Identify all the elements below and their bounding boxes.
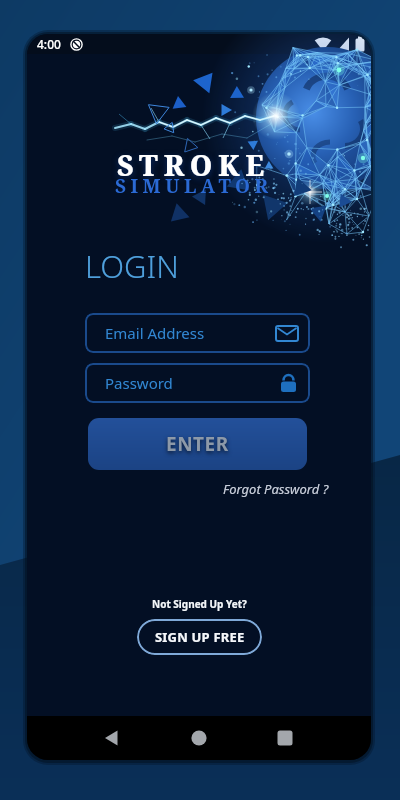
staticText: 4:00 [37,36,61,52]
button[interactable] [104,730,120,746]
button[interactable]: ENTER [88,418,307,470]
staticText: SIMULATOR [115,173,273,199]
button[interactable]: Password [85,363,310,403]
staticText: Password [105,373,173,393]
staticText: STROKE [117,146,271,184]
staticText: LOGIN [85,245,179,287]
staticText: SIGN UP FREE [155,628,245,646]
button[interactable] [191,730,207,746]
staticText: Email Address [105,323,205,343]
button[interactable] [277,730,293,746]
staticText: ENTER [166,431,229,457]
staticText: Not Signed Up Yet? [152,597,247,611]
button[interactable]: Email Address [85,313,310,353]
button[interactable]: Forgot Password ? [223,480,329,498]
button[interactable]: SIGN UP FREE [137,619,262,655]
